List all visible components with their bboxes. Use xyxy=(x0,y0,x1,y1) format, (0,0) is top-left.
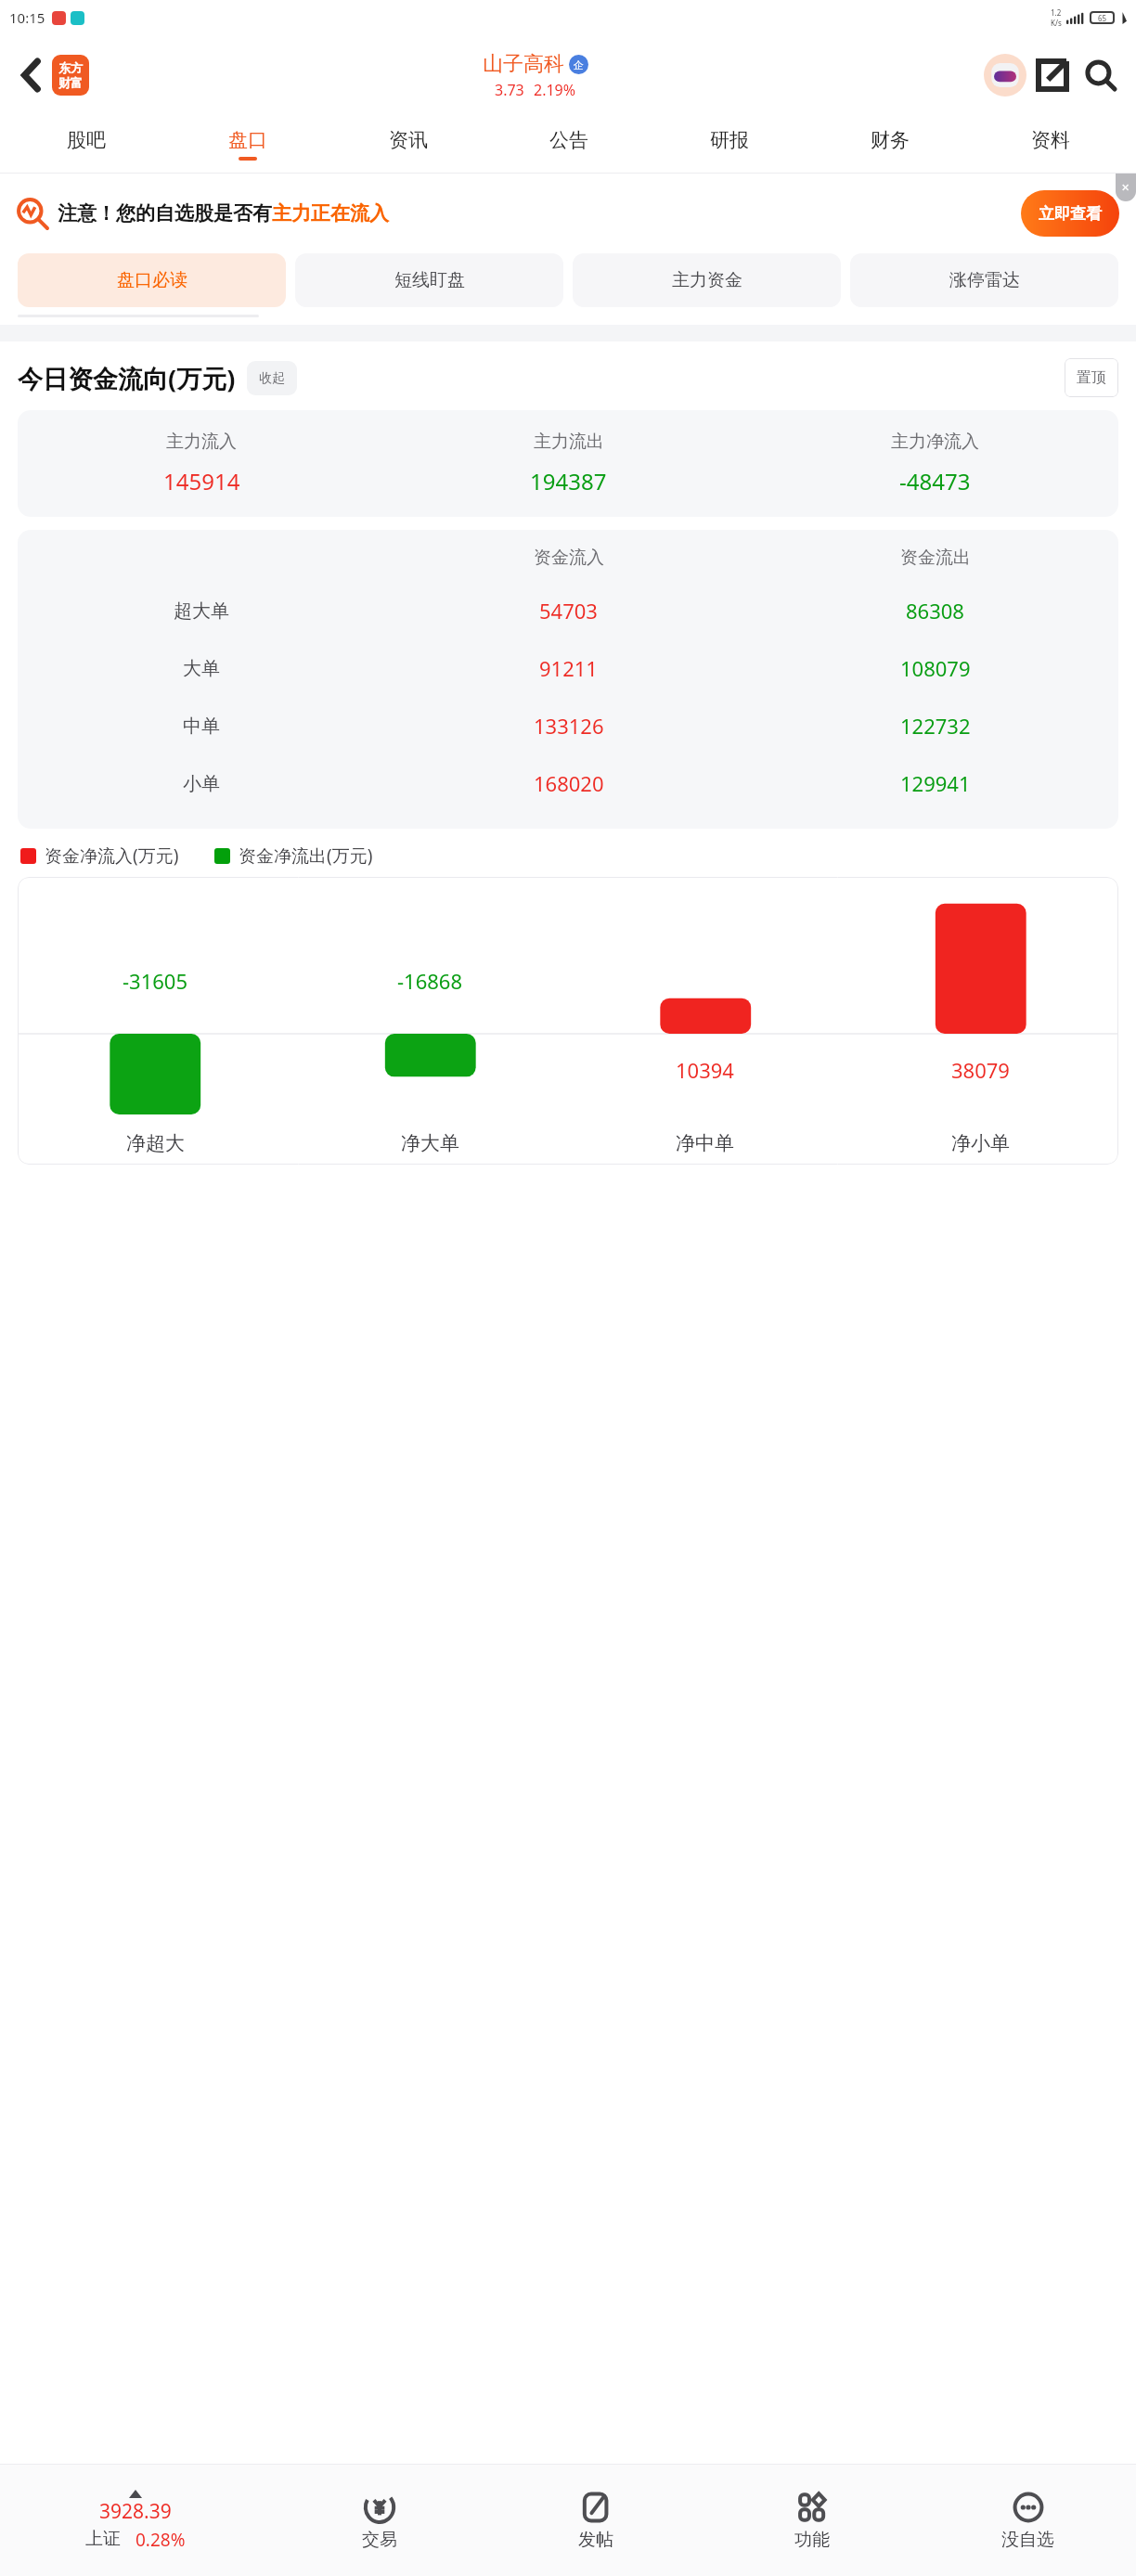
staticText: 资讯 xyxy=(389,128,428,152)
staticText: 129941 xyxy=(900,769,971,797)
button[interactable]: 中单 xyxy=(18,697,1118,754)
staticText: 133126 xyxy=(534,712,604,740)
staticText: 0.28% xyxy=(136,2528,186,2552)
button[interactable]: Search xyxy=(1077,51,1125,99)
button[interactable]: 财务 xyxy=(809,115,970,173)
staticText: 2.19% xyxy=(534,80,576,100)
staticText: 净大单 xyxy=(401,1131,459,1155)
button[interactable]: 没自选 xyxy=(920,2465,1136,2576)
button[interactable]: 盘口必读 xyxy=(18,253,286,307)
button[interactable]: 收起 xyxy=(247,361,297,395)
button[interactable]: 公告 xyxy=(488,115,649,173)
staticText: 盘口 xyxy=(228,128,267,152)
staticText: 38079 xyxy=(951,1056,1010,1084)
staticText: 主力流出 xyxy=(534,431,604,453)
staticText: -31605 xyxy=(123,967,188,995)
staticText: 交易 xyxy=(362,2529,397,2551)
staticText: 净超大 xyxy=(126,1131,185,1155)
staticText: 没自选 xyxy=(1001,2529,1054,2551)
staticText: 主力正在流入 xyxy=(272,201,389,225)
staticText: 91211 xyxy=(539,654,598,682)
staticText: 财富 xyxy=(58,75,83,90)
button[interactable]: East Money xyxy=(52,55,89,96)
staticText: 资金净流入(万元) xyxy=(45,844,179,868)
staticText: 122732 xyxy=(900,712,971,740)
staticText: 145914 xyxy=(163,466,240,496)
staticText: 主力流入 xyxy=(166,431,237,453)
button[interactable]: 功能 xyxy=(704,2465,920,2576)
staticText: 企 xyxy=(574,58,584,71)
button[interactable]: 主力资金 xyxy=(573,253,841,307)
button[interactable]: Back xyxy=(11,55,52,96)
staticText: 中单 xyxy=(183,715,220,738)
staticText: 主力净流入 xyxy=(891,431,979,453)
staticText: 86308 xyxy=(906,597,964,625)
staticText: 注意！您的自选股是否有 xyxy=(58,201,272,225)
staticText: 上证 xyxy=(85,2528,121,2550)
staticText: ✕ xyxy=(1121,182,1130,194)
staticText: 168020 xyxy=(534,769,604,797)
staticText: 财务 xyxy=(871,128,910,152)
staticText: 108079 xyxy=(900,654,971,682)
button[interactable]: 3928.39 xyxy=(0,2465,271,2576)
button[interactable]: 立即查看 xyxy=(1021,190,1119,237)
staticText: 研报 xyxy=(710,128,749,152)
button[interactable]: 涨停雷达 xyxy=(850,253,1118,307)
staticText: 收起 xyxy=(259,370,285,387)
staticText: 大单 xyxy=(183,657,220,680)
staticText: 主力资金 xyxy=(672,269,742,291)
button[interactable]: 主力流入 xyxy=(18,431,1118,496)
button[interactable]: AI assistant xyxy=(982,52,1028,98)
staticText: 短线盯盘 xyxy=(394,269,465,291)
staticText: 东方 xyxy=(58,60,83,75)
staticText: 资料 xyxy=(1031,128,1070,152)
staticText: 净小单 xyxy=(951,1131,1010,1155)
button[interactable]: 研报 xyxy=(649,115,809,173)
staticText: 今日资金流向(万元) xyxy=(18,361,236,395)
button[interactable]: 大单 xyxy=(18,639,1118,697)
staticText: 65 xyxy=(1098,13,1107,23)
staticText: 股吧 xyxy=(67,128,106,152)
button[interactable]: 置顶 xyxy=(1065,358,1118,397)
button[interactable]: 小单 xyxy=(18,754,1118,812)
staticText: 小单 xyxy=(183,772,220,795)
button[interactable]: 资讯 xyxy=(328,115,488,173)
staticText: 10:15 xyxy=(9,8,45,27)
staticText: 194387 xyxy=(530,466,607,496)
staticText: 涨停雷达 xyxy=(949,269,1020,291)
staticText: 功能 xyxy=(794,2529,830,2551)
button[interactable]: 短线盯盘 xyxy=(295,253,563,307)
button[interactable]: 股吧 xyxy=(6,115,167,173)
staticText: 54703 xyxy=(539,597,598,625)
button[interactable]: 超大单 xyxy=(18,582,1118,639)
staticText: 3928.39 xyxy=(99,2498,172,2525)
button[interactable]: 注意！您的自选股是否有 xyxy=(17,174,1119,253)
staticText: 超大单 xyxy=(174,599,229,623)
staticText: -16868 xyxy=(397,967,463,995)
staticText: 置顶 xyxy=(1077,368,1106,387)
staticText: 资金流出 xyxy=(900,547,971,569)
staticText: 3.73 xyxy=(495,80,524,100)
staticText: -48473 xyxy=(899,466,971,496)
staticText: K/s xyxy=(1051,18,1062,28)
button[interactable]: Share xyxy=(1028,51,1077,99)
staticText: 净中单 xyxy=(676,1131,734,1155)
staticText: 1.2 xyxy=(1051,7,1062,18)
staticText: 盘口必读 xyxy=(117,269,187,291)
staticText: 立即查看 xyxy=(1039,204,1102,224)
button[interactable]: 盘口 xyxy=(167,115,328,173)
button[interactable]: 发帖 xyxy=(487,2465,704,2576)
button[interactable]: Close xyxy=(1116,174,1136,201)
staticText: 资金流入 xyxy=(534,547,604,569)
button[interactable]: 交易 xyxy=(271,2465,487,2576)
staticText: 公告 xyxy=(549,128,588,152)
button[interactable]: 资料 xyxy=(970,115,1130,173)
staticText: 资金净流出(万元) xyxy=(239,844,373,868)
staticText: 山子高科 xyxy=(483,51,564,77)
staticText: 10394 xyxy=(676,1056,734,1084)
staticText: 发帖 xyxy=(578,2529,613,2551)
